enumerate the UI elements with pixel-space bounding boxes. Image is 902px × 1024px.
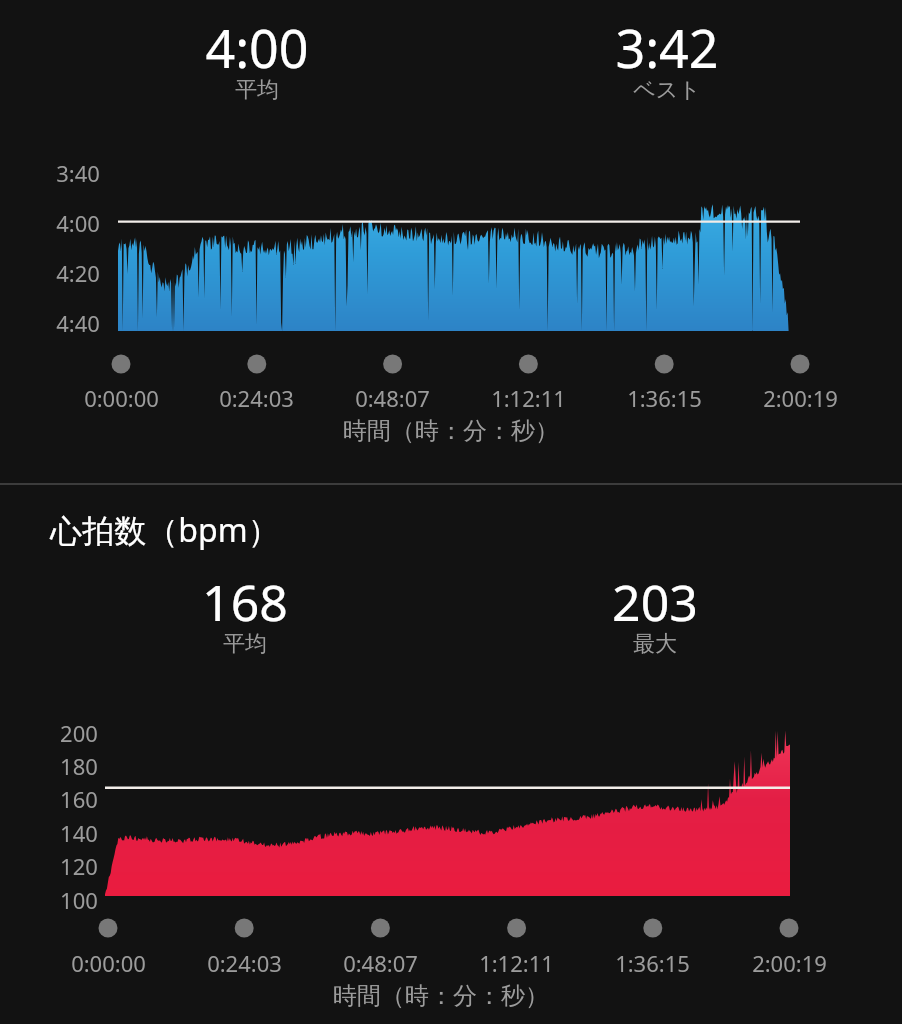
staticText: 0:00:00 [84,383,159,413]
button[interactable]: 4:00 [205,12,309,83]
staticText: 180 [60,751,98,781]
staticText: 1:36:15 [627,383,702,413]
staticText: 120 [60,851,98,881]
staticText: 0:00:00 [71,948,146,978]
staticText: 0:48:07 [355,383,430,413]
staticText: 0:24:03 [219,383,294,413]
button[interactable]: 203 [612,568,698,636]
staticText: 1:12:11 [479,948,554,978]
staticText: 1:12:11 [491,383,566,413]
staticText: 4:00 [56,208,100,238]
button[interactable]: 平均 [235,76,279,104]
staticText: 4:20 [56,258,100,288]
staticText: 0:48:07 [343,948,418,978]
staticText: 200 [60,718,98,748]
staticText: 2:00:19 [752,948,827,978]
staticText: 140 [60,818,98,848]
staticText: 2:00:19 [763,383,838,413]
button[interactable]: 168 [202,568,288,636]
button[interactable]: 3:42 [615,12,719,83]
staticText: 時間（時：分：秒） [343,416,559,446]
button[interactable]: 平均 [223,630,267,658]
staticText: 3:40 [56,158,100,188]
staticText: 心拍数（bpm） [50,508,280,552]
staticText: 時間（時：分：秒） [333,981,549,1011]
button[interactable]: ベスト [633,76,701,104]
staticText: 100 [60,885,98,915]
staticText: 160 [60,784,98,814]
staticText: 0:24:03 [207,948,282,978]
button[interactable]: 最大 [633,630,677,658]
staticText: 4:40 [56,308,100,338]
staticText: 1:36:15 [615,948,690,978]
